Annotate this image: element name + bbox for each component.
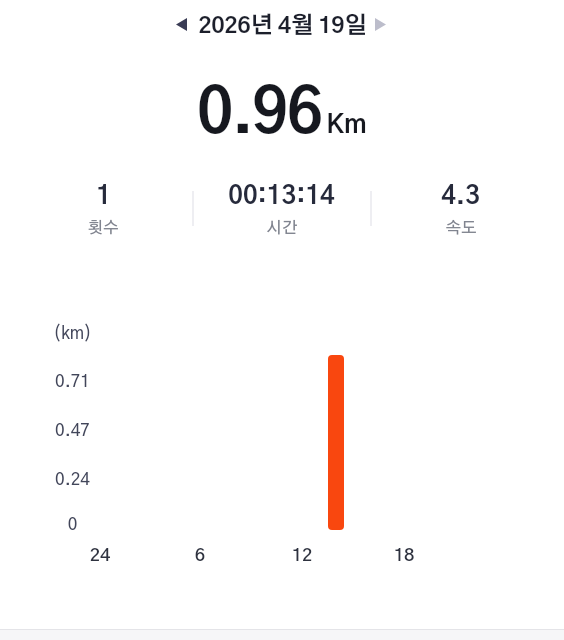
staticText: 0 xyxy=(32,516,113,533)
staticText: 00:13:14 xyxy=(228,184,335,209)
staticText: 18 xyxy=(364,547,444,565)
button[interactable] xyxy=(169,12,193,36)
staticText: (km) xyxy=(32,325,113,342)
staticText: 4.3 xyxy=(441,184,480,209)
staticText: 0.71 xyxy=(32,373,113,390)
staticText: 2026년 4월 19일 xyxy=(198,15,367,38)
staticText: Km xyxy=(326,112,367,138)
staticText: 0.47 xyxy=(32,422,113,439)
staticText: 6 xyxy=(160,547,240,565)
staticText: 24 xyxy=(60,547,140,565)
staticText: 시간 xyxy=(266,220,298,236)
button[interactable] xyxy=(368,12,392,36)
staticText: 0.24 xyxy=(32,471,113,488)
staticText: 0.96 xyxy=(197,84,321,146)
staticText: 1 xyxy=(96,184,111,209)
staticText: 12 xyxy=(262,547,342,565)
staticText: 횟수 xyxy=(87,220,119,236)
staticText: 속도 xyxy=(445,220,477,236)
